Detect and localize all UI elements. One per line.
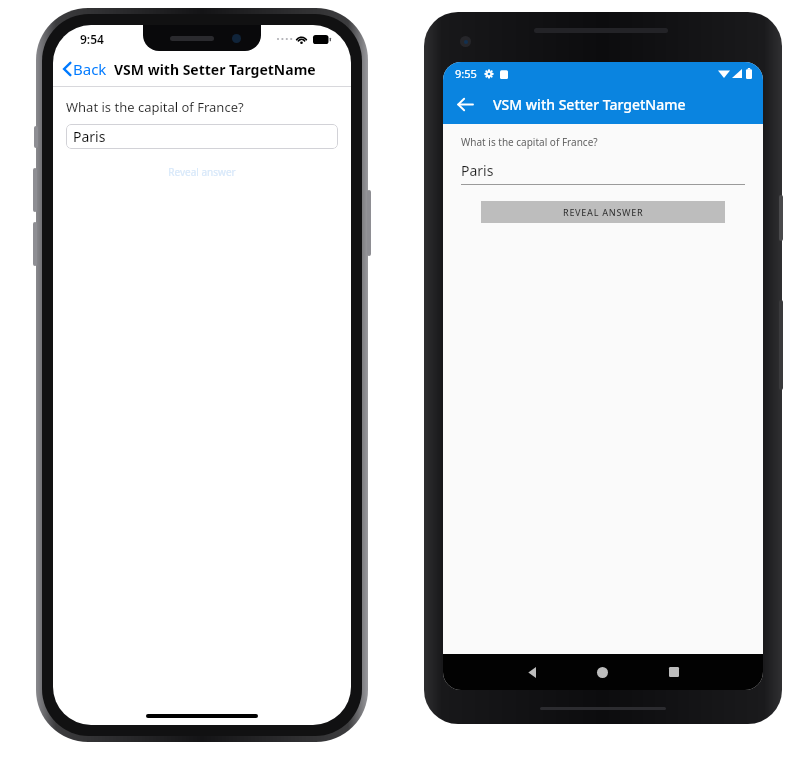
staticText: Paris xyxy=(461,161,494,180)
staticText: Paris xyxy=(73,127,106,146)
staticText: VSM with Setter TargetName xyxy=(114,60,316,79)
button[interactable]: Back xyxy=(497,654,567,690)
staticText: REVEAL ANSWER xyxy=(563,206,644,218)
button[interactable]: Home xyxy=(567,654,638,690)
staticText: 9:55 xyxy=(455,66,477,81)
button[interactable]: Paris xyxy=(66,124,338,149)
staticText: 9:54 xyxy=(80,31,104,47)
staticText: Reveal answer xyxy=(168,165,236,179)
staticText: Back xyxy=(73,59,107,79)
button[interactable]: Paris xyxy=(461,161,745,185)
button[interactable]: Navigate up xyxy=(449,88,481,120)
button[interactable]: Reveal answer xyxy=(53,164,351,180)
button[interactable]: Recent apps xyxy=(638,654,709,690)
button[interactable]: Back xyxy=(61,59,107,79)
button[interactable]: REVEAL ANSWER xyxy=(481,201,725,223)
staticText: What is the capital of France? xyxy=(461,135,598,149)
staticText: What is the capital of France? xyxy=(66,98,244,116)
staticText: VSM with Setter TargetName xyxy=(493,95,686,114)
